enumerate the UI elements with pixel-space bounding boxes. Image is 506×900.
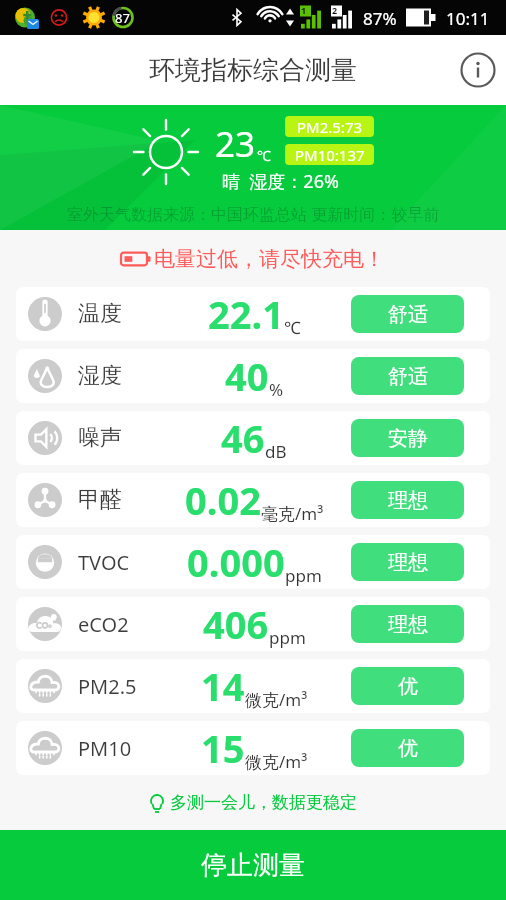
staticText: 环境指标综合测量 xyxy=(149,54,357,87)
staticText: ppm xyxy=(285,564,322,587)
staticText: 湿度 xyxy=(78,362,122,390)
staticText: 22.1 xyxy=(208,288,284,340)
staticText: 理想 xyxy=(388,612,428,637)
staticText: TVOC xyxy=(78,549,130,576)
button[interactable]: 理想 xyxy=(351,543,464,581)
staticText: dB xyxy=(265,440,287,463)
staticText: 2 xyxy=(332,4,338,16)
button[interactable]: 温度 xyxy=(16,287,490,341)
staticText: 理想 xyxy=(388,488,428,513)
staticText: 46 xyxy=(221,412,265,464)
staticText: ppm xyxy=(269,626,306,649)
staticText: 0.000 xyxy=(187,536,285,588)
staticText: 微克/m³ xyxy=(245,750,308,773)
staticText: 舒适 xyxy=(388,302,428,327)
staticText: 理想 xyxy=(388,550,428,575)
button[interactable]: PM10 xyxy=(16,721,490,775)
staticText: 噪声 xyxy=(78,424,122,452)
staticText: 温度 xyxy=(78,300,122,328)
staticText: 室外天气数据来源：中国环监总站 更新时间：较早前 xyxy=(67,203,440,225)
staticText: 停止测量 xyxy=(201,849,305,882)
staticText: 电量过低，请尽快充电！ xyxy=(154,246,385,272)
staticText: 优 xyxy=(398,736,418,761)
staticText: 多测一会儿，数据更稳定 xyxy=(170,792,357,813)
button[interactable]: 优 xyxy=(351,667,464,705)
staticText: 安静 xyxy=(388,426,428,451)
button[interactable]: 理想 xyxy=(351,481,464,519)
staticText: PM10 xyxy=(78,735,132,762)
staticText: 舒适 xyxy=(388,364,428,389)
button[interactable]: 停止测量 xyxy=(0,830,506,900)
staticText: eCO2 xyxy=(78,611,129,638)
staticText: 15 xyxy=(201,722,245,774)
staticText: 0.02 xyxy=(185,474,261,526)
staticText: PM10:137 xyxy=(295,145,365,165)
button[interactable]: Info xyxy=(458,50,498,90)
staticText: 优 xyxy=(398,674,418,699)
staticText: ℃ xyxy=(284,316,301,339)
button[interactable]: 甲醛 xyxy=(16,473,490,527)
staticText: 14 xyxy=(201,660,245,712)
button[interactable]: 理想 xyxy=(351,605,464,643)
button[interactable]: PM2.5 xyxy=(16,659,490,713)
staticText: 毫克/m³ xyxy=(261,502,324,525)
staticText: 87 xyxy=(115,9,130,27)
staticText: % xyxy=(269,378,284,401)
button[interactable]: 优 xyxy=(351,729,464,767)
button[interactable]: eCO2 xyxy=(16,597,490,651)
staticText: 406 xyxy=(203,598,269,650)
button[interactable]: 湿度 xyxy=(16,349,490,403)
button[interactable]: 安静 xyxy=(351,419,464,457)
button[interactable]: 噪声 xyxy=(16,411,490,465)
staticText: 40 xyxy=(225,350,269,402)
staticText: PM2.5:73 xyxy=(297,117,363,137)
staticText: 晴 湿度：26% xyxy=(222,169,339,194)
staticText: 23 xyxy=(215,120,256,168)
staticText: 10:11 xyxy=(446,7,490,30)
staticText: 甲醛 xyxy=(78,486,122,514)
button[interactable]: 舒适 xyxy=(351,357,464,395)
staticText: PM2.5 xyxy=(78,673,137,700)
button[interactable]: 舒适 xyxy=(351,295,464,333)
staticText: 87% xyxy=(363,7,397,30)
staticText: 微克/m³ xyxy=(245,688,308,711)
staticText: 1 xyxy=(301,4,307,16)
staticText: ℃ xyxy=(257,146,271,165)
button[interactable]: TVOC xyxy=(16,535,490,589)
